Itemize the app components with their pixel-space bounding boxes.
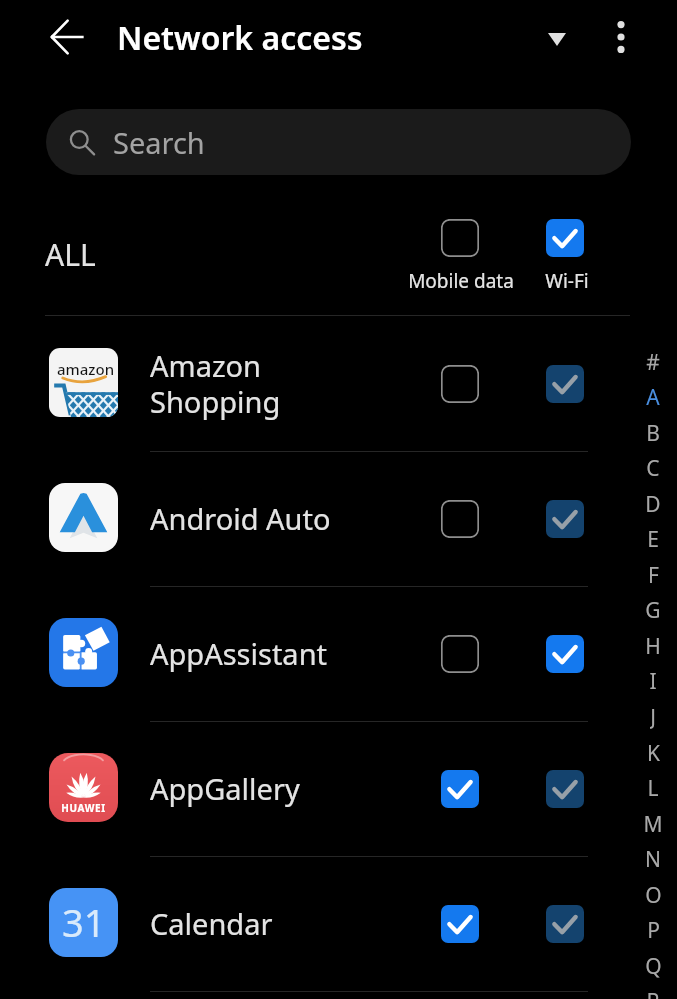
staticText: Android Auto <box>150 499 331 538</box>
staticText: Network access <box>117 16 363 60</box>
staticText: M <box>643 810 663 838</box>
staticText: R <box>646 987 660 999</box>
button[interactable]: Checked <box>546 219 584 257</box>
staticText: A <box>646 383 660 411</box>
button[interactable]: Checked <box>546 365 584 403</box>
staticText: O <box>645 881 662 909</box>
staticText: I <box>649 667 657 695</box>
staticText: H <box>645 632 661 660</box>
button[interactable]: Android Auto <box>0 455 677 590</box>
staticText: HUAWEI <box>49 801 118 815</box>
button[interactable]: Checked <box>441 770 479 808</box>
staticText: AppAssistant <box>150 634 328 673</box>
staticText: J <box>650 703 656 731</box>
staticText: E <box>647 525 659 553</box>
button[interactable]: Unchecked <box>441 365 479 403</box>
button[interactable]: Checked <box>441 905 479 943</box>
staticText: K <box>647 739 660 767</box>
button[interactable]: 31 <box>0 860 677 995</box>
staticText: B <box>646 419 660 447</box>
staticText: L <box>647 774 659 802</box>
staticText: amazon <box>57 359 115 379</box>
button[interactable]: amazon <box>0 320 677 455</box>
button[interactable]: Checked <box>546 770 584 808</box>
button[interactable]: Checked <box>546 905 584 943</box>
button[interactable]: Checked <box>546 635 584 673</box>
staticText: N <box>645 845 661 873</box>
staticText: # <box>646 348 660 376</box>
button[interactable]: Checked <box>546 500 584 538</box>
staticText: Search <box>113 123 205 162</box>
staticText: Q <box>645 952 662 980</box>
button[interactable]: Unchecked <box>441 219 479 257</box>
button[interactable]: More options <box>597 13 645 61</box>
button[interactable]: Search <box>46 109 631 175</box>
staticText: Wi-Fi <box>527 268 607 294</box>
staticText: F <box>648 561 659 589</box>
button[interactable]: AppAssistant <box>0 590 677 725</box>
staticText: D <box>645 490 661 518</box>
staticText: C <box>646 454 660 482</box>
button[interactable]: Unchecked <box>441 635 479 673</box>
button[interactable]: Navigate up <box>42 12 92 62</box>
staticText: P <box>647 916 660 944</box>
staticText: 31 <box>62 896 106 948</box>
staticText: Calendar <box>150 904 273 943</box>
button[interactable]: HUAWEI <box>0 725 677 860</box>
staticText: G <box>645 596 661 624</box>
staticText: Amazon Shopping <box>150 346 281 422</box>
button[interactable]: Filter <box>533 15 581 63</box>
button[interactable]: Alphabet index <box>629 340 677 999</box>
staticText: ALL <box>45 234 96 275</box>
staticText: AppGallery <box>150 769 300 808</box>
staticText: Mobile data <box>396 268 526 294</box>
button[interactable]: Unchecked <box>441 500 479 538</box>
